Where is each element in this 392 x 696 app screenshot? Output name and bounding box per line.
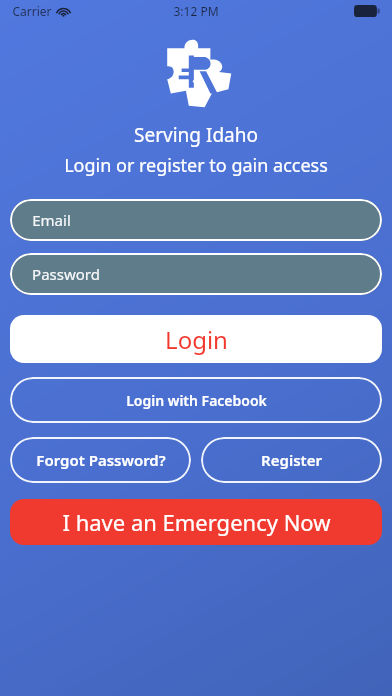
staticText: I have an Emergency Now	[62, 507, 331, 537]
button[interactable]: Login with Facebook	[10, 377, 382, 423]
staticText: Email	[32, 210, 71, 230]
button[interactable]: Password	[10, 253, 382, 295]
button[interactable]: Register	[201, 437, 382, 483]
button[interactable]: Email	[10, 199, 382, 241]
staticText: Login with Facebook	[126, 391, 267, 410]
staticText: Serving Idaho	[0, 122, 392, 148]
staticText: Carrier	[12, 3, 52, 19]
staticText: Login	[165, 323, 228, 356]
staticText: 3:12 PM	[173, 3, 219, 19]
staticText: Register	[261, 450, 322, 470]
button[interactable]: Login	[10, 315, 382, 363]
staticText: Forgot Password?	[36, 450, 166, 470]
staticText: Login or register to gain access	[0, 153, 392, 178]
button[interactable]: Forgot Password?	[10, 437, 191, 483]
button[interactable]: I have an Emergency Now	[10, 499, 382, 545]
staticText: Password	[32, 264, 100, 284]
